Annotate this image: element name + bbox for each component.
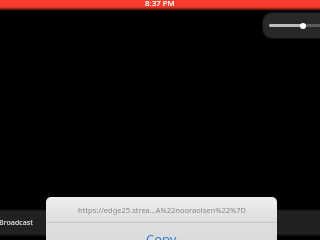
- button[interactable]: Volume: [263, 13, 320, 38]
- staticText: 8:37 PM: [145, 0, 175, 9]
- staticText: Copy: [146, 230, 177, 240]
- staticText: https://edge25.strea…A%22nooraolsen%22%7…: [78, 205, 246, 215]
- button[interactable]: Copy: [46, 223, 277, 240]
- button[interactable]: Broadcast: [0, 217, 39, 235]
- staticText: Broadcast: [0, 217, 33, 227]
